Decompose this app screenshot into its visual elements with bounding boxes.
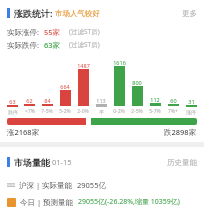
staticText: 实际涨停: [7,27,40,37]
staticText: 市场人气较好 [55,9,100,18]
staticText: 涨2168家 [7,127,40,137]
staticText: 2-5% [131,108,143,115]
staticText: 沪深 | 实际量能 [19,180,73,190]
staticText: 历史量能 [167,158,197,167]
staticText: 1487 [77,62,90,69]
staticText: (过滤ST后) [69,27,100,36]
staticText: 今日 | 预测量能 [20,197,74,207]
staticText: 跌停 [8,109,18,115]
staticText: 2-0% [77,108,89,115]
button[interactable]: 更多 [182,9,197,18]
staticText: 涨停 [186,109,196,115]
staticText: 63家 [44,40,61,50]
button[interactable]: 沪深量能图例 [7,179,197,191]
staticText: 84 [44,97,51,104]
staticText: 31 [188,98,195,105]
other: 今日预测量能图例 [7,198,16,207]
staticText: 1616 [113,59,126,66]
staticText: 5-7% [149,108,161,115]
staticText: 5-2% [59,108,71,115]
staticText: (过滤ST后) [69,40,100,49]
staticText: 664 [60,83,70,90]
staticText: 实际跌停: [7,40,40,50]
staticText: 市场量能 [14,157,50,168]
staticText: 涨跌统计: [14,7,53,19]
staticText: 01-15 [52,157,72,167]
staticText: 62 [26,97,33,104]
staticText: 112 [150,96,160,103]
staticText: 55家 [44,27,61,37]
staticText: 跌2898家 [164,127,197,137]
other: 沪深量能图例 [7,181,15,189]
staticText: 7-5% [41,108,53,115]
button[interactable]: 今日预测量能图例 [7,197,197,207]
staticText: 60 [170,97,177,104]
staticText: 7%+ [168,108,178,115]
staticText: 29055亿(-26.28%,缩量 10359亿) [78,197,180,207]
staticText: 平 [99,109,104,115]
staticText: 29055亿 [77,180,106,190]
staticText: 63 [9,98,16,105]
staticText: 0-2% [113,108,125,115]
staticText: 113 [96,97,106,104]
staticText: 更多 [182,9,197,18]
button[interactable] [7,118,197,125]
button[interactable]: 历史量能 [167,158,197,167]
staticText: <7% [25,108,35,115]
staticText: 800 [132,79,142,86]
